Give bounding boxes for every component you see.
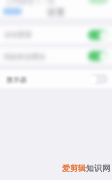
button[interactable]: 自动更新 <box>0 26 112 43</box>
button[interactable]: 选项 <box>3 8 22 15</box>
button[interactable]: 自动播放 <box>88 0 108 4</box>
button[interactable]: 显示器 <box>0 70 112 88</box>
button[interactable]: 消息推送通知 <box>88 51 108 61</box>
staticText: 自动更新 <box>4 30 32 39</box>
staticText: 爱剪辑 <box>62 163 86 173</box>
button[interactable]: 自动更新 <box>88 30 108 40</box>
button[interactable]: 消息推送通知 <box>0 48 112 64</box>
staticText: 显示器 <box>6 75 27 84</box>
staticText: 知识网 <box>86 163 110 173</box>
staticText: 自动播放下一集 <box>6 0 55 6</box>
staticText: 设置 <box>47 6 65 17</box>
button[interactable]: 显示器 <box>88 74 108 84</box>
staticText: 消息推送通知 <box>3 52 45 61</box>
